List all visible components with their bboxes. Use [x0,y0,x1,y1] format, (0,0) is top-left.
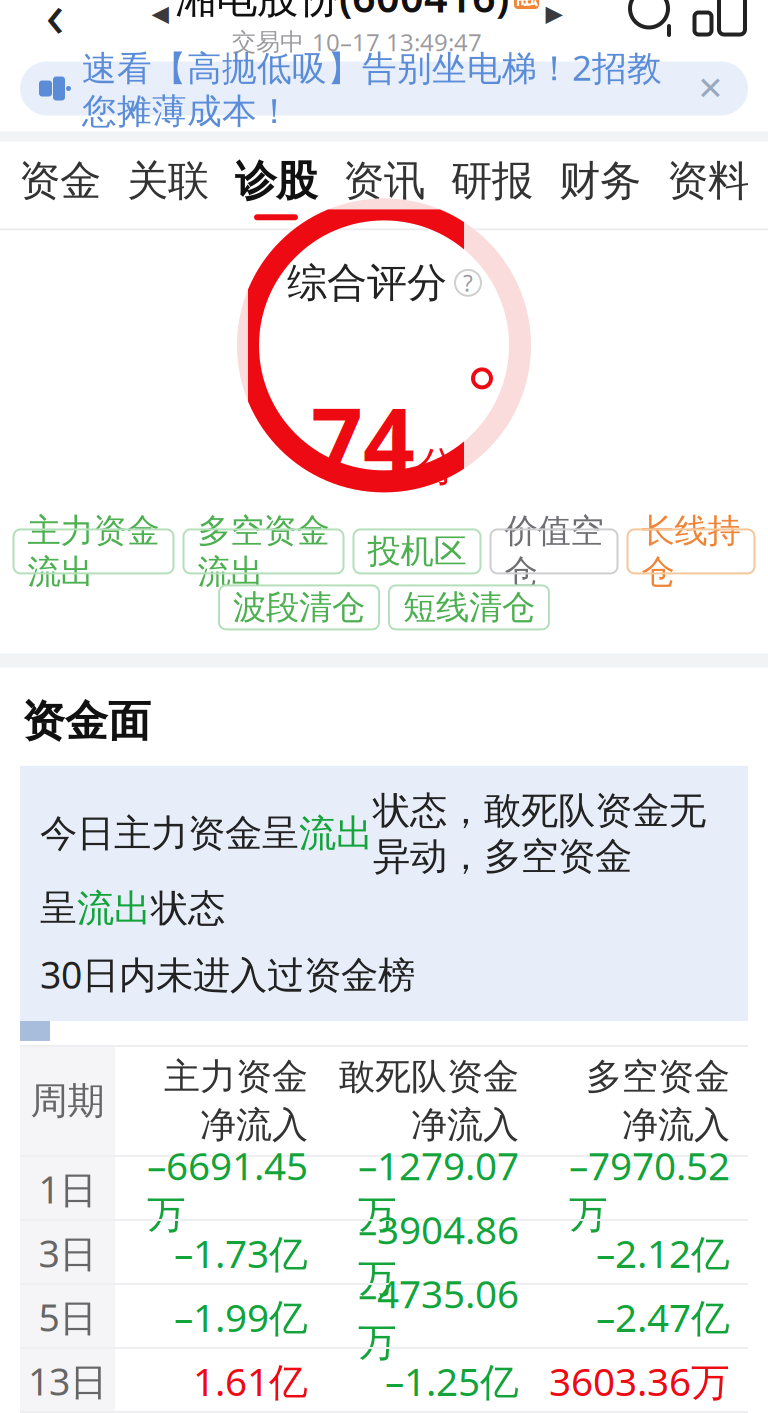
button[interactable]: 资讯 [330,141,438,228]
staticText: –2.12亿 [596,1227,730,1279]
staticText: 湘电股份(600416) [175,0,509,24]
staticText: 多空资金流出 [197,510,329,592]
button[interactable]: Next stock [539,0,569,33]
button[interactable]: 长线持仓 [627,529,754,573]
button[interactable]: 价值空仓 [490,529,617,573]
button[interactable]: 短线清仓 [389,585,549,629]
staticText: 关联 [127,155,209,206]
button[interactable]: 资料 [654,141,762,228]
staticText: 74 [311,379,415,500]
staticText: 流出 [77,885,151,931]
staticText: ◀ [151,1,168,26]
staticText: 研报 [451,155,533,206]
staticText: –1.25亿 [385,1355,519,1407]
button[interactable]: 波段清仓 [219,585,379,629]
staticText: 流出 [299,811,373,857]
button[interactable]: 研报 [438,141,546,228]
staticText: 资讯 [343,155,425,206]
staticText: 5日 [38,1292,96,1342]
button[interactable]: Back [18,0,92,50]
staticText: 诊股 [235,155,317,206]
staticText: 融 [516,0,537,10]
staticText: 综合评分 [287,258,447,307]
staticText: –2.47亿 [596,1291,730,1343]
staticText: 13日 [28,1356,107,1406]
staticText: ‹ [45,0,64,54]
button[interactable]: 投机区 [353,529,480,573]
staticText: ? [463,268,473,298]
staticText: 30日内未进入过资金榜 [40,949,415,999]
staticText: 波段清仓 [233,587,365,628]
staticText: 多空资金 [586,1055,730,1099]
button[interactable]: 诊股 [222,141,330,228]
staticText: 净流入 [622,1103,730,1147]
staticText: 资金面 [22,695,151,748]
staticText: –6691.45万 [147,1139,308,1238]
button[interactable]: 资金 [6,141,114,228]
staticText: 状态，敢死队资金无异动，多空资金 [373,788,706,879]
button[interactable]: Score help [455,270,481,296]
staticText: 3日 [38,1228,96,1278]
staticText: 1日 [38,1164,96,1214]
staticText: –1.73亿 [174,1227,308,1279]
staticText: 10–17 13:49:47 [312,26,482,58]
staticText: 1.61亿 [193,1355,308,1407]
staticText: 净流入 [200,1103,308,1147]
staticText: –1279.07万 [358,1139,519,1238]
staticText: 速看【高抛低吸】告别坐电梯！2招教您摊薄成本！ [82,44,662,133]
button[interactable]: 关联 [114,141,222,228]
button[interactable]: 多空资金流出 [183,529,343,573]
button[interactable]: 主力资金流出 [13,529,173,573]
staticText: –3904.86万 [358,1203,519,1302]
staticText: 短线清仓 [403,587,535,628]
staticText: 呈 [40,885,77,931]
button[interactable]: Previous stock [145,0,175,33]
staticText: 敢死队资金 [339,1055,519,1099]
staticText: 交易中 [232,27,304,57]
staticText: 价值空仓 [504,510,603,592]
staticText: 投机区 [367,531,466,572]
staticText: –7970.52万 [569,1139,730,1238]
button[interactable]: 财务 [546,141,654,228]
staticText: –1.99亿 [174,1291,308,1343]
staticText: 主力资金 [164,1055,308,1099]
staticText: 状态 [151,885,225,931]
staticText: 分 [417,442,457,492]
staticText: 资料 [667,155,749,206]
staticText: 财务 [559,155,641,206]
staticText: 周期 [30,1078,104,1124]
staticText: 今日主力资金呈 [40,811,299,857]
staticText: ✕ [697,70,724,107]
staticText: 净流入 [411,1103,519,1147]
button[interactable]: Search [622,0,686,45]
staticText: 长线持仓 [641,510,740,592]
staticText: ▶ [545,1,562,26]
staticText: –4735.06万 [358,1267,519,1366]
staticText: 主力资金流出 [27,510,159,592]
button[interactable]: Layout [686,0,750,45]
staticText: 3603.36万 [549,1355,730,1407]
staticText: 资金 [19,155,101,206]
button[interactable]: 速看【高抛低吸】告别坐电梯！2招教您摊薄成本！ [0,61,768,115]
